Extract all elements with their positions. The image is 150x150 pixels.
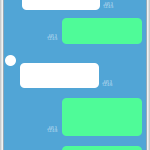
staticText: 12:45	[103, 4, 113, 9]
button[interactable]: Sender profile photo	[5, 55, 16, 66]
staticText: Jun 3	[103, 1, 112, 6]
staticText: 12:46	[102, 82, 112, 87]
staticText: 12:48	[47, 128, 57, 133]
staticText: 12:45	[47, 36, 57, 41]
staticText: Jun 3	[102, 79, 111, 84]
button[interactable]: Jun 3	[0, 98, 150, 136]
staticText: Jun 3	[47, 125, 56, 130]
button[interactable]: Jun 3	[0, 18, 150, 44]
button[interactable]: Jun 3	[0, 63, 150, 88]
button[interactable]: Jun 3	[0, 146, 150, 150]
staticText: Jun 3	[47, 33, 56, 38]
button[interactable]: Jun 3	[0, 0, 150, 10]
